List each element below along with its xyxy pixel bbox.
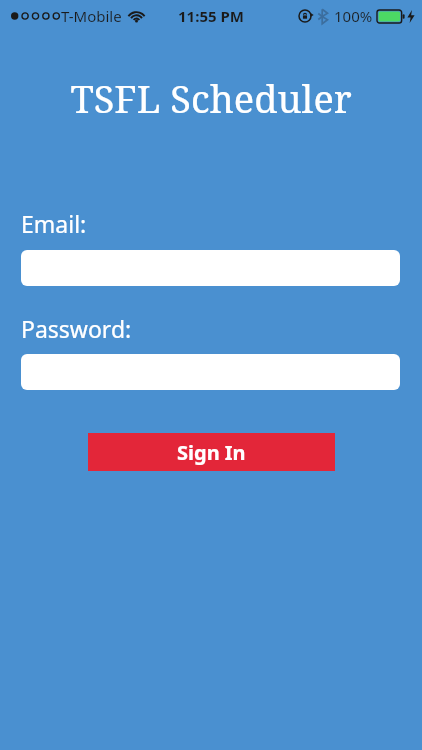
staticText: Email:	[21, 208, 87, 239]
button[interactable]: Email input field	[21, 250, 400, 286]
staticText: TSFL Scheduler	[70, 72, 352, 124]
button[interactable]: Password input field	[21, 354, 400, 390]
staticText: Password:	[21, 313, 132, 344]
staticText: 100%	[334, 6, 373, 26]
button[interactable]: Sign In	[88, 433, 335, 471]
staticText: Sign In	[177, 439, 246, 466]
staticText: 11:55 PM	[178, 6, 244, 26]
staticText: T-Mobile	[61, 6, 122, 26]
